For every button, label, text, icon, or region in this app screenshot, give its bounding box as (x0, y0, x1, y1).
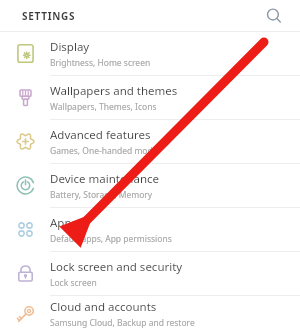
button[interactable]: Device maintenance (0, 164, 300, 207)
staticText: Battery, Storage, Memory (50, 189, 153, 201)
staticText: Lock screen (50, 277, 97, 289)
staticText: Default apps, App permissions (50, 233, 172, 245)
button[interactable]: Lock screen and security (0, 252, 300, 295)
staticText: Advanced features (50, 127, 151, 143)
staticText: Brightness, Home screen (50, 57, 151, 69)
staticText: SETTINGS (22, 9, 76, 23)
staticText: Lock screen and security (50, 259, 183, 275)
staticText: Cloud and accounts (50, 299, 157, 315)
staticText: Wallpapers, Themes, Icons (50, 101, 157, 113)
button[interactable]: Search (260, 2, 288, 30)
button[interactable]: Advanced features (0, 120, 300, 163)
button[interactable]: Wallpapers and themes (0, 76, 300, 119)
button[interactable]: Apps (0, 208, 300, 251)
button[interactable]: Cloud and accounts (0, 296, 300, 332)
staticText: Apps (50, 215, 78, 231)
staticText: Wallpapers and themes (50, 83, 178, 99)
staticText: Device maintenance (50, 171, 160, 187)
staticText: Games, One-handed mode (50, 145, 158, 157)
staticText: Display (50, 39, 90, 55)
staticText: Samsung Cloud, Backup and restore (50, 317, 195, 329)
button[interactable]: Display (0, 32, 300, 75)
